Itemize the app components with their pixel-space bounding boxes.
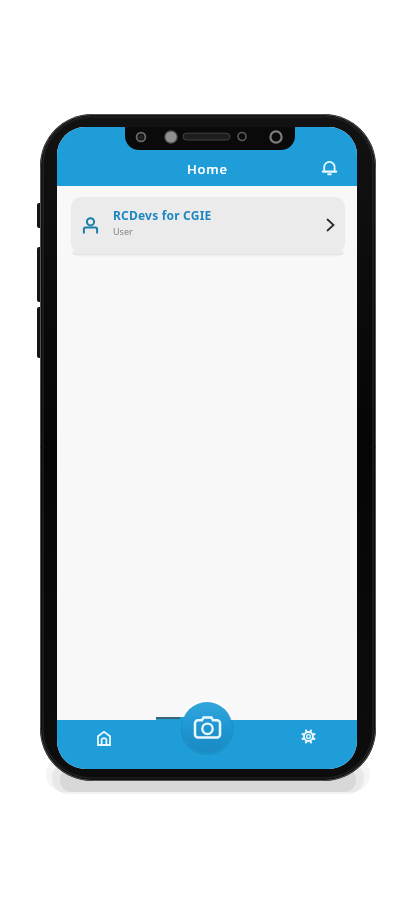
button[interactable]: [288, 720, 328, 760]
staticText: Home: [187, 160, 228, 178]
button[interactable]: [322, 161, 337, 176]
staticText: User: [113, 225, 133, 237]
button[interactable]: [84, 720, 124, 760]
staticText: RCDevs for CGIE: [113, 207, 212, 223]
button[interactable]: [182, 702, 232, 752]
button[interactable]: RCDevs for CGIE: [71, 197, 345, 253]
